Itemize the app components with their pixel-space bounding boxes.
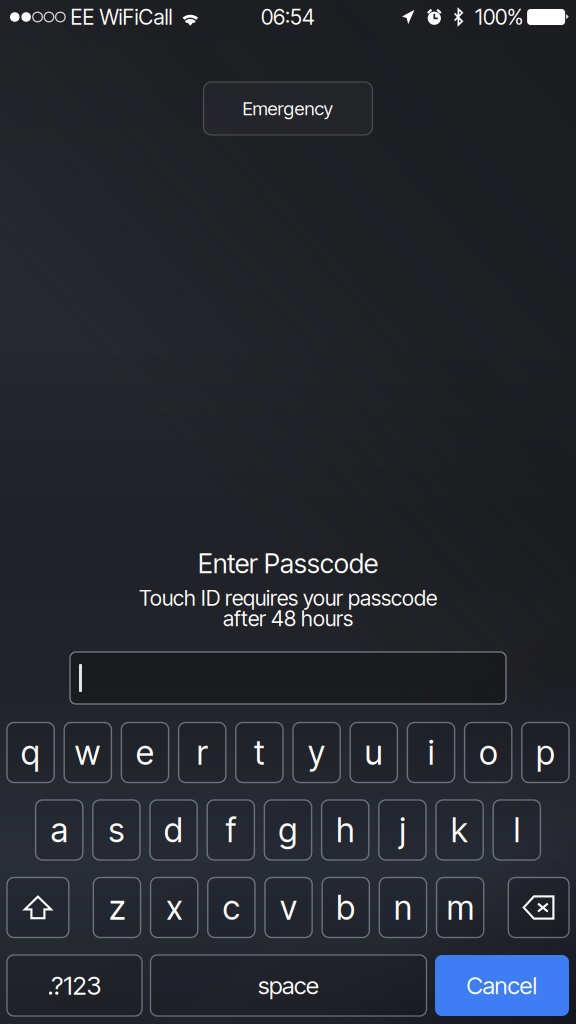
button[interactable]: z (93, 877, 141, 937)
staticText: e (136, 732, 154, 773)
staticText: g (278, 810, 297, 850)
button[interactable]: j (379, 800, 426, 860)
staticText: Emergency (242, 97, 333, 120)
button[interactable]: .?123 (7, 955, 142, 1016)
button[interactable]: y (293, 722, 340, 782)
button[interactable]: e (121, 722, 169, 782)
staticText: after 48 hours (223, 606, 353, 631)
staticText: w (75, 732, 101, 773)
button[interactable]: t (236, 722, 283, 782)
staticText: n (394, 887, 412, 928)
staticText: o (479, 732, 497, 773)
button[interactable]: Cancel (435, 955, 569, 1016)
button[interactable]: s (93, 800, 140, 860)
staticText: Cancel (466, 971, 537, 1000)
button[interactable]: r (179, 722, 226, 782)
button[interactable]: p (522, 722, 569, 782)
button[interactable]: Delete (508, 877, 569, 937)
staticText: t (254, 732, 265, 773)
button[interactable]: w (64, 722, 111, 782)
staticText: z (109, 887, 125, 928)
button[interactable]: n (379, 877, 427, 937)
button[interactable]: m (437, 877, 484, 937)
button[interactable]: c (208, 877, 255, 937)
button[interactable]: space (150, 955, 426, 1016)
button[interactable]: d (150, 800, 197, 860)
staticText: l (514, 810, 520, 850)
staticText: x (166, 887, 182, 928)
staticText: space (258, 971, 319, 1000)
staticText: Touch ID requires your passcode (139, 585, 437, 611)
staticText: k (451, 810, 468, 850)
staticText: h (336, 810, 354, 850)
staticText: v (280, 887, 297, 928)
staticText: c (223, 887, 240, 928)
staticText: 100% (475, 4, 523, 30)
button[interactable]: x (151, 877, 198, 937)
staticText: m (447, 887, 474, 928)
button[interactable]: g (264, 800, 312, 860)
staticText: Enter Passcode (198, 547, 378, 580)
button[interactable]: Emergency (203, 82, 372, 135)
button[interactable]: l (493, 800, 540, 860)
button[interactable]: Shift (7, 877, 69, 937)
staticText: f (226, 810, 236, 850)
button[interactable]: b (322, 877, 369, 937)
button[interactable]: q (7, 722, 54, 782)
staticText: d (164, 810, 183, 850)
staticText: u (365, 732, 383, 773)
button[interactable]: a (36, 800, 83, 860)
staticText: j (399, 810, 405, 850)
staticText: b (336, 887, 355, 928)
button[interactable]: u (350, 722, 397, 782)
staticText: q (21, 732, 40, 773)
staticText: s (108, 810, 124, 850)
button[interactable]: k (436, 800, 483, 860)
button[interactable]: i (407, 722, 455, 782)
staticText: 06:54 (261, 4, 315, 30)
button[interactable]: f (207, 800, 254, 860)
staticText: a (51, 810, 68, 850)
staticText: p (536, 732, 555, 773)
staticText: EE WiFiCall (71, 4, 173, 30)
button[interactable]: v (265, 877, 312, 937)
staticText: .?123 (47, 970, 101, 1001)
staticText: y (308, 732, 325, 773)
button[interactable]: o (465, 722, 512, 782)
staticText: i (428, 732, 434, 773)
staticText: r (197, 732, 208, 773)
button[interactable]: h (322, 800, 369, 860)
